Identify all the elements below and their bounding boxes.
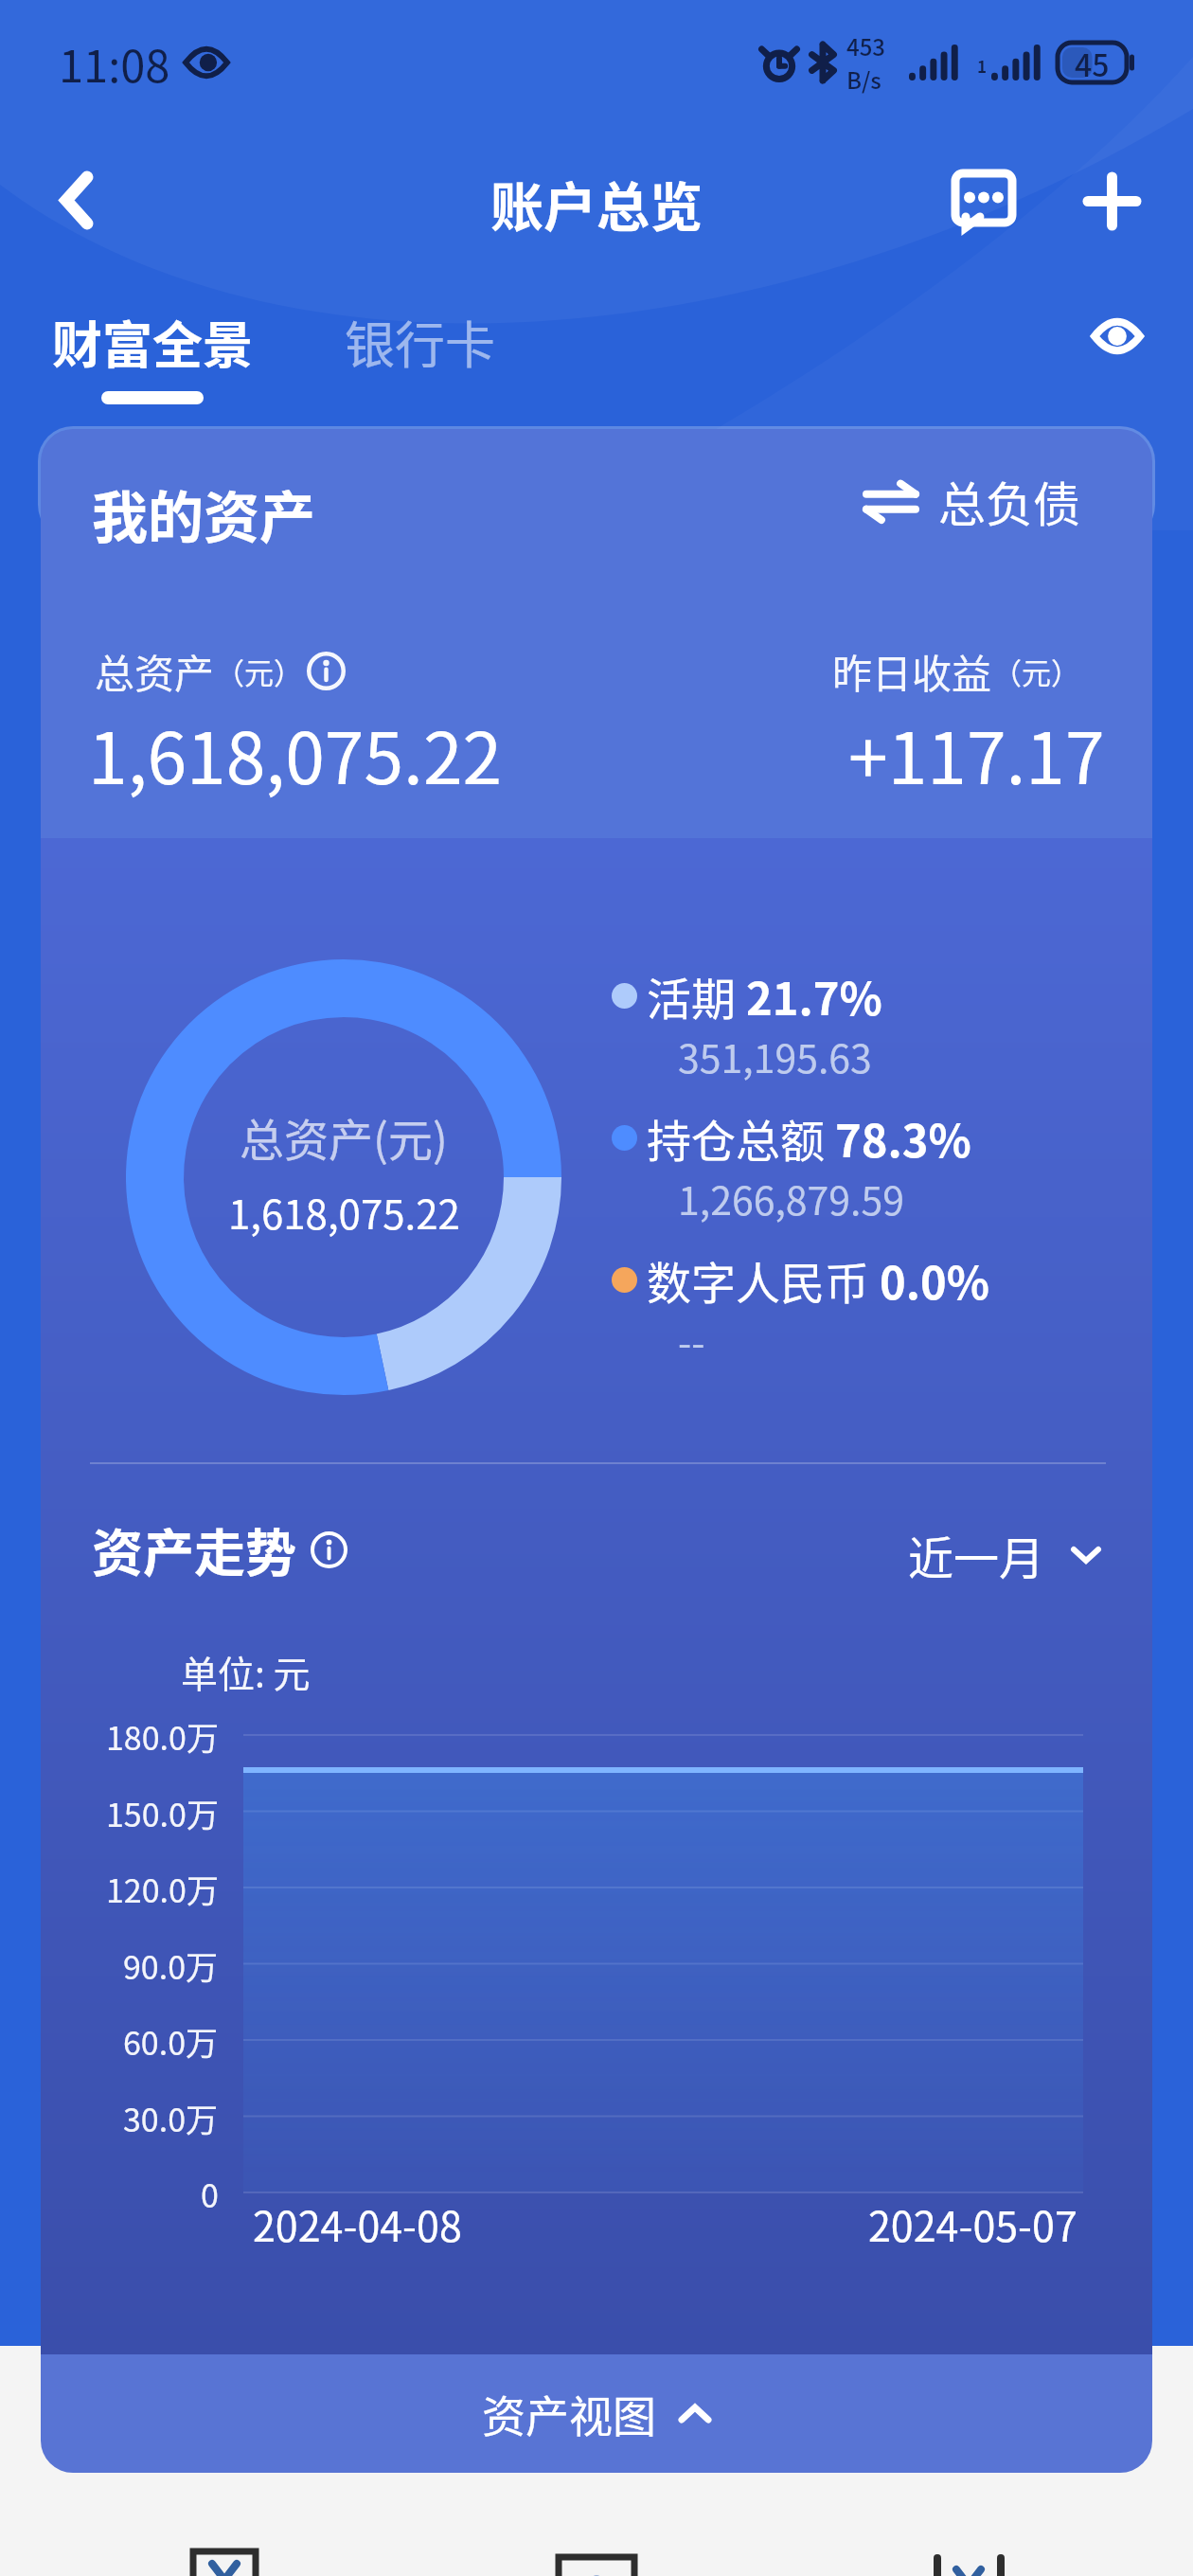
staticText: 活期 xyxy=(647,963,746,1028)
button[interactable]: 银行卡 xyxy=(345,306,495,379)
staticText: 0 xyxy=(201,2171,219,2217)
staticText: 180.0万 xyxy=(106,1713,219,1760)
staticText: 120.0万 xyxy=(106,1866,219,1912)
staticText: 总负债 xyxy=(938,467,1080,535)
staticText: 2024-04-08 xyxy=(253,2194,462,2253)
button[interactable]: Recents xyxy=(795,2472,1193,2576)
staticText: -- xyxy=(678,1312,705,1368)
staticText: 昨日收益 xyxy=(832,642,992,700)
staticText: 11:08 xyxy=(59,30,170,95)
button[interactable]: 资产视图 xyxy=(41,2354,1152,2473)
staticText: 45 xyxy=(1075,42,1110,81)
staticText: 我的资产 xyxy=(92,474,316,554)
button[interactable]: Messages xyxy=(936,143,1031,257)
staticText: 78.3% xyxy=(835,1105,971,1170)
button[interactable]: 总负债 xyxy=(864,467,1080,535)
staticText: 90.0万 xyxy=(123,1942,219,1989)
staticText: 1 xyxy=(977,54,988,78)
button[interactable]: Back xyxy=(20,143,134,257)
button[interactable]: Toggle balance visibility xyxy=(1070,291,1165,382)
staticText: 21.7% xyxy=(746,963,882,1028)
staticText: 持仓总额 xyxy=(647,1105,835,1170)
staticText: 1,618,075.22 xyxy=(228,1183,460,1241)
staticText: 60.0万 xyxy=(123,2018,219,2065)
button[interactable]: 财富全景 xyxy=(52,306,253,404)
staticText: 453 xyxy=(846,29,886,63)
staticText: 资产走势 xyxy=(92,1512,296,1586)
staticText: 银行卡 xyxy=(345,306,495,379)
staticText: 财富全景 xyxy=(52,306,253,379)
staticText: 资产视图 xyxy=(482,2382,656,2445)
staticText: 单位: 元 xyxy=(181,1645,311,1698)
staticText: 0.0% xyxy=(880,1247,989,1312)
button[interactable]: 近一月 xyxy=(908,1522,1101,1588)
staticText: 总资产(元) xyxy=(240,1104,448,1169)
staticText: 351,195.63 xyxy=(678,1028,872,1083)
button[interactable]: Home xyxy=(398,2472,795,2576)
staticText: 总资产 xyxy=(95,642,215,700)
staticText: 2024-05-07 xyxy=(868,2194,1077,2253)
staticText: B/s xyxy=(846,63,881,96)
staticText: （元） xyxy=(992,650,1080,692)
staticText: 1,618,075.22 xyxy=(88,702,503,805)
staticText: 近一月 xyxy=(908,1522,1045,1588)
staticText: 1,266,879.59 xyxy=(678,1170,904,1225)
staticText: 30.0万 xyxy=(123,2095,219,2141)
staticText: 150.0万 xyxy=(106,1790,219,1836)
staticText: （元） xyxy=(215,650,303,692)
button[interactable]: Back xyxy=(0,2472,398,2576)
staticText: 数字人民币 xyxy=(647,1247,880,1312)
staticText: +117.17 xyxy=(848,702,1105,805)
staticText: 账户总览 xyxy=(490,165,703,241)
button[interactable]: Add xyxy=(1055,144,1168,258)
